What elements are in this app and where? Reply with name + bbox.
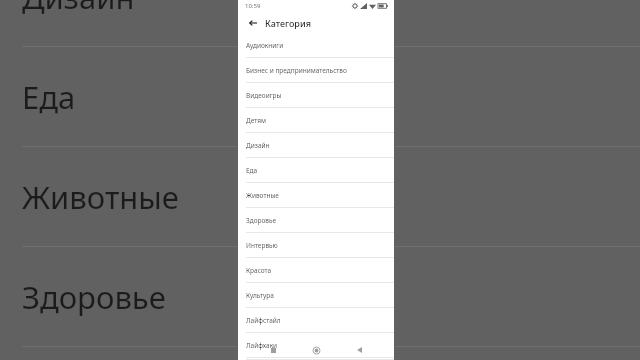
button[interactable]: Детям (238, 108, 394, 133)
staticText: Категория (265, 17, 311, 29)
button[interactable]: Главная (308, 342, 324, 358)
button[interactable]: Лайфстайл (238, 308, 394, 333)
button[interactable]: Здоровье (238, 208, 394, 233)
staticText: Музыка (246, 358, 271, 360)
staticText: Здоровье (246, 216, 277, 225)
button[interactable]: Видеоигры (238, 83, 394, 108)
button[interactable]: Бизнес и предпринимательство (238, 58, 394, 83)
staticText: Животные (246, 191, 279, 200)
button[interactable]: Животные (238, 183, 394, 208)
button[interactable]: Недавние (265, 342, 281, 358)
staticText: Красота (246, 266, 272, 275)
button[interactable]: Здоровье (0, 247, 640, 347)
staticText: Видеоигры (246, 91, 282, 100)
button[interactable]: Культура (238, 283, 394, 308)
button[interactable]: Дизайн (238, 133, 394, 158)
button[interactable]: Еда (0, 47, 640, 147)
button[interactable]: Еда (238, 158, 394, 183)
button[interactable]: Дизайн (0, 0, 640, 47)
staticText: 10:59 (245, 2, 261, 10)
staticText: Лайфхаки (246, 341, 278, 350)
staticText: Бизнес и предпринимательство (246, 66, 347, 75)
button[interactable]: Животные (0, 147, 640, 247)
button[interactable]: Красота (238, 258, 394, 283)
button[interactable]: Назад (246, 16, 260, 30)
staticText: Культура (246, 291, 274, 300)
button[interactable]: Аудиокниги (238, 33, 394, 58)
button[interactable]: Музыка (238, 358, 394, 360)
staticText: Детям (246, 116, 267, 125)
staticText: Лайфстайл (246, 316, 281, 325)
staticText: Животные (22, 176, 179, 218)
staticText: Дизайн (22, 0, 135, 18)
staticText: Еда (22, 76, 76, 118)
button[interactable]: Назад (351, 342, 367, 358)
staticText: Интервью (246, 241, 278, 250)
button[interactable]: Лайфхаки (238, 333, 394, 358)
staticText: Здоровье (22, 276, 166, 318)
staticText: Аудиокниги (246, 41, 284, 50)
staticText: Дизайн (246, 141, 270, 150)
staticText: Еда (246, 166, 258, 175)
button[interactable]: Интервью (238, 233, 394, 258)
